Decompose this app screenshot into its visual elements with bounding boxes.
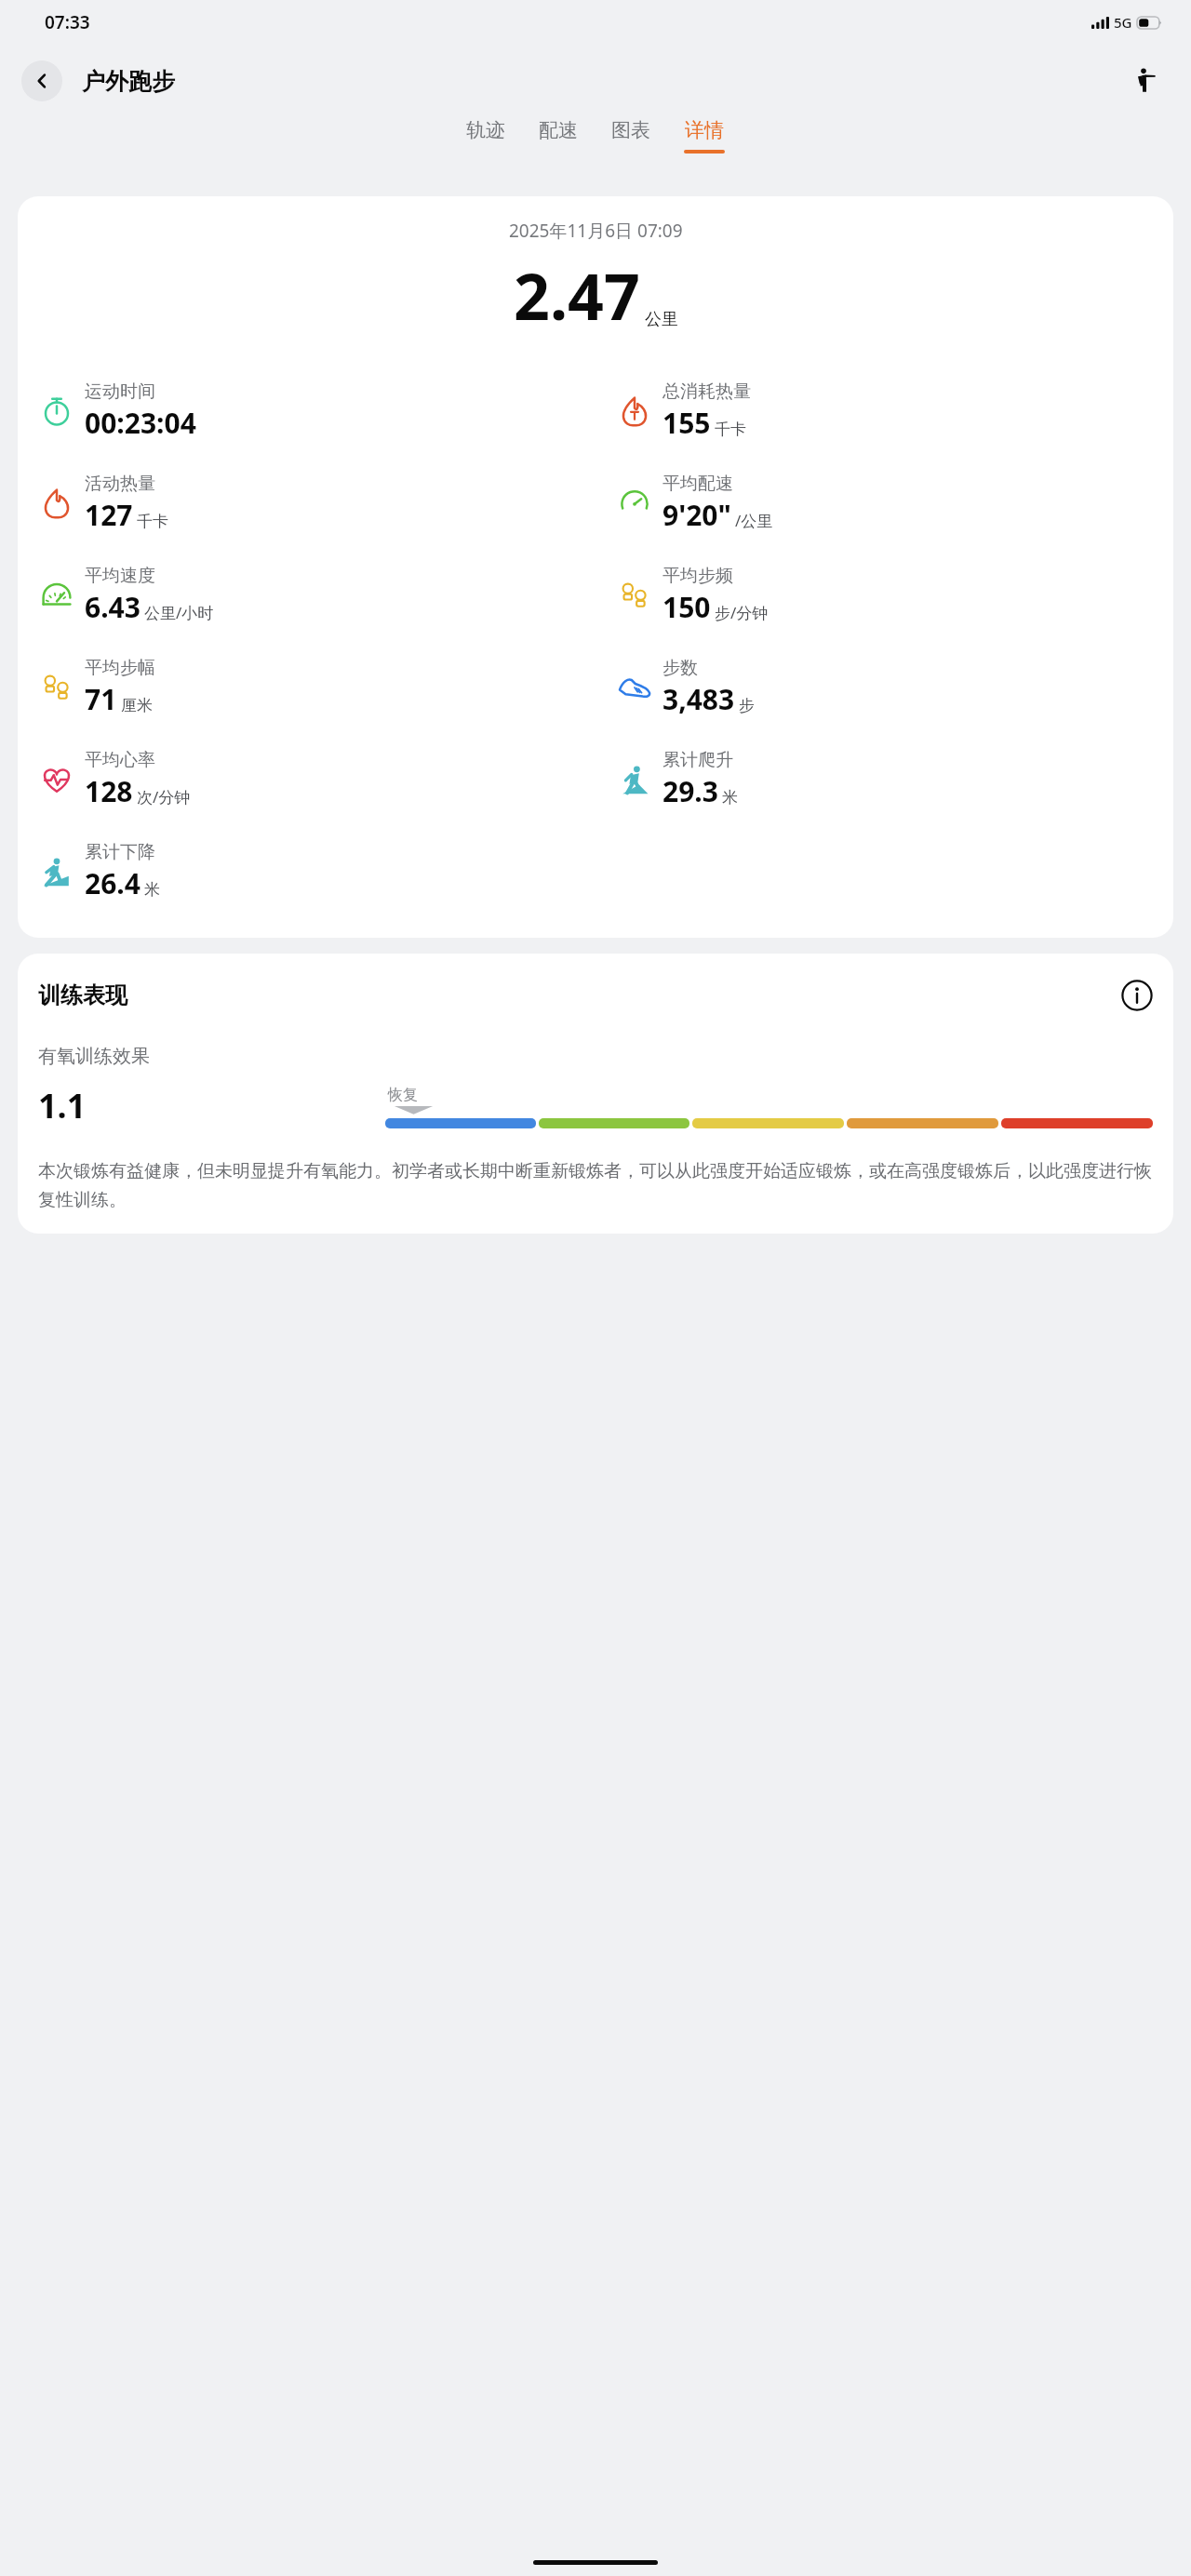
staticText: 平均心率 — [85, 749, 155, 771]
staticText: 配速 — [539, 118, 578, 142]
staticText: 米 — [722, 788, 738, 808]
staticText: 3,483 — [662, 680, 735, 718]
button[interactable]: Running activity — [1126, 60, 1167, 101]
staticText: 公里/小时 — [144, 602, 214, 623]
staticText: 2025年11月6日 07:09 — [509, 219, 683, 243]
staticText: 71 — [85, 680, 117, 718]
staticText: 1.1 — [38, 1083, 87, 1128]
staticText: 运动时间 — [85, 380, 155, 403]
staticText: 本次锻炼有益健康，但未明显提升有氧能力。初学者或长期中断重新锻炼者，可以从此强度… — [38, 1160, 1153, 1211]
staticText: 步/分钟 — [715, 602, 769, 623]
staticText: 07:33 — [45, 10, 90, 34]
staticText: 00:23:04 — [85, 404, 196, 442]
staticText: 轨迹 — [466, 118, 505, 142]
staticText: 公里 — [645, 309, 678, 330]
staticText: 训练表现 — [38, 981, 127, 1009]
staticText: 千卡 — [137, 512, 168, 531]
staticText: 128 — [85, 772, 133, 810]
staticText: 150 — [662, 588, 711, 626]
staticText: 平均速度 — [85, 565, 155, 587]
staticText: /公里 — [735, 510, 773, 531]
staticText: 平均步频 — [662, 565, 733, 587]
staticText: 米 — [144, 880, 160, 900]
staticText: 总消耗热量 — [662, 380, 751, 403]
staticText: 9'20" — [662, 496, 731, 534]
staticText: 127 — [85, 496, 133, 534]
button[interactable]: 详情 — [684, 118, 725, 153]
button[interactable]: 图表 — [611, 118, 650, 150]
staticText: 详情 — [685, 118, 724, 142]
staticText: 155 — [662, 404, 711, 442]
staticText: 5G — [1114, 13, 1132, 32]
button[interactable]: Back — [21, 60, 62, 101]
staticText: 累计下降 — [85, 841, 155, 863]
staticText: 步数 — [662, 657, 698, 679]
staticText: 图表 — [611, 118, 650, 142]
button[interactable]: Info — [1121, 980, 1153, 1011]
staticText: 平均配速 — [662, 473, 733, 495]
staticText: 千卡 — [715, 420, 746, 439]
staticText: 步 — [739, 696, 755, 715]
staticText: 平均步幅 — [85, 657, 155, 679]
staticText: 活动热量 — [85, 473, 155, 495]
staticText: 29.3 — [662, 772, 718, 810]
staticText: 恢复 — [388, 1086, 418, 1104]
staticText: 有氧训练效果 — [38, 1045, 150, 1068]
staticText: 26.4 — [85, 864, 141, 902]
staticText: 6.43 — [85, 588, 141, 626]
button[interactable]: 配速 — [539, 118, 578, 150]
staticText: 2.47 — [514, 252, 640, 339]
staticText: 厘米 — [121, 696, 153, 715]
staticText: 累计爬升 — [662, 749, 733, 771]
staticText: 户外跑步 — [82, 67, 175, 96]
button[interactable]: 轨迹 — [466, 118, 505, 150]
staticText: 次/分钟 — [137, 786, 191, 808]
